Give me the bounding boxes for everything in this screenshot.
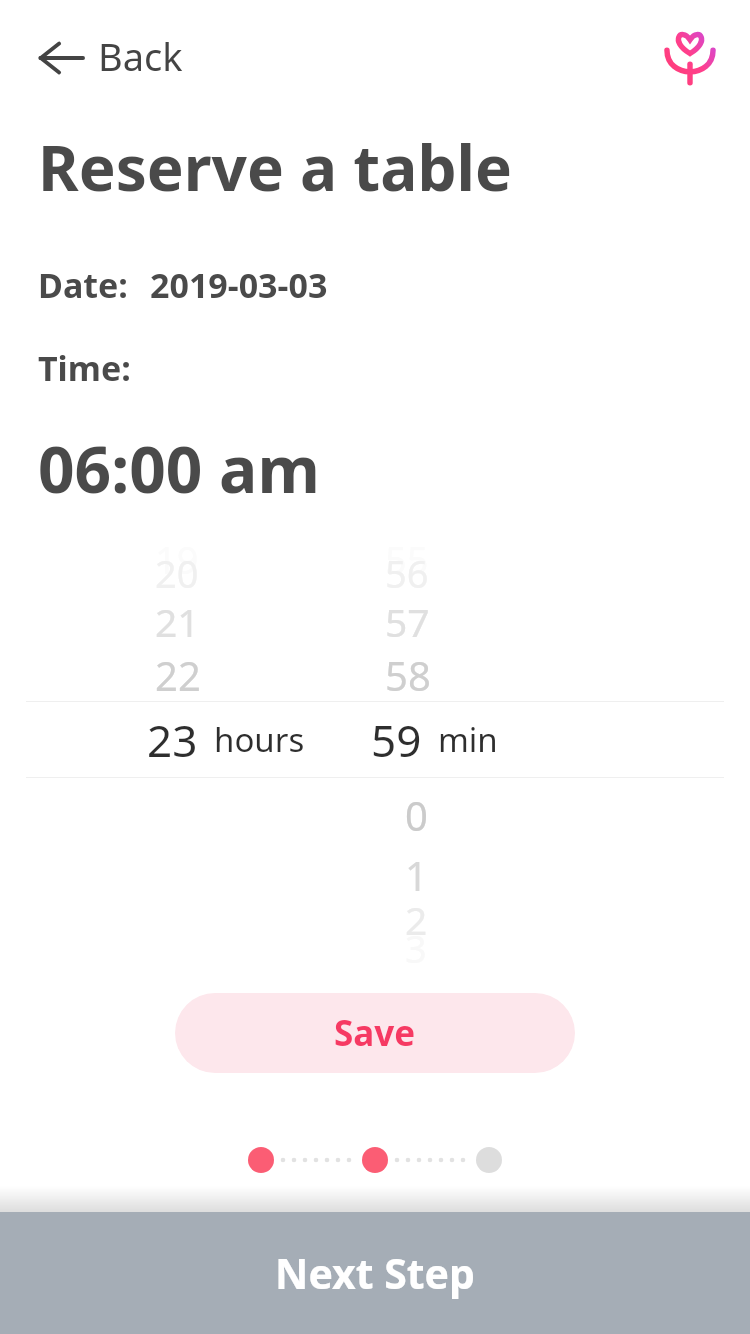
staticText: Reserve a table — [38, 125, 513, 209]
staticText: 59 — [371, 710, 422, 770]
staticText: min — [438, 717, 498, 762]
staticText: 2019-03-03 — [150, 262, 328, 308]
staticText: Next Step — [275, 1245, 475, 1301]
staticText: 1 — [405, 848, 428, 902]
staticText: 2 — [405, 893, 428, 946]
button[interactable]: Save — [175, 993, 575, 1073]
staticText: 55 — [385, 533, 429, 585]
staticText: 58 — [385, 648, 431, 702]
staticText: 21 — [155, 595, 200, 648]
staticText: 22 — [155, 648, 201, 702]
button[interactable]: Back — [30, 22, 191, 94]
staticText: 23 — [147, 710, 198, 770]
staticText: 0 — [405, 788, 428, 842]
button[interactable]: App logo — [658, 22, 722, 86]
button[interactable]: 23 — [0, 702, 750, 777]
staticText: Time: — [38, 345, 131, 391]
button[interactable]: Next Step — [0, 1212, 750, 1334]
staticText: hours — [214, 717, 305, 762]
staticText: 57 — [385, 595, 430, 648]
staticText: Save — [334, 1009, 416, 1057]
staticText: 20 — [155, 547, 199, 599]
staticText: Date: — [38, 262, 128, 308]
staticText: 3 — [405, 922, 427, 974]
staticText: 56 — [385, 547, 429, 599]
staticText: 06:00 am — [38, 425, 320, 512]
staticText: 19 — [155, 533, 199, 585]
staticText: Back — [98, 30, 183, 82]
